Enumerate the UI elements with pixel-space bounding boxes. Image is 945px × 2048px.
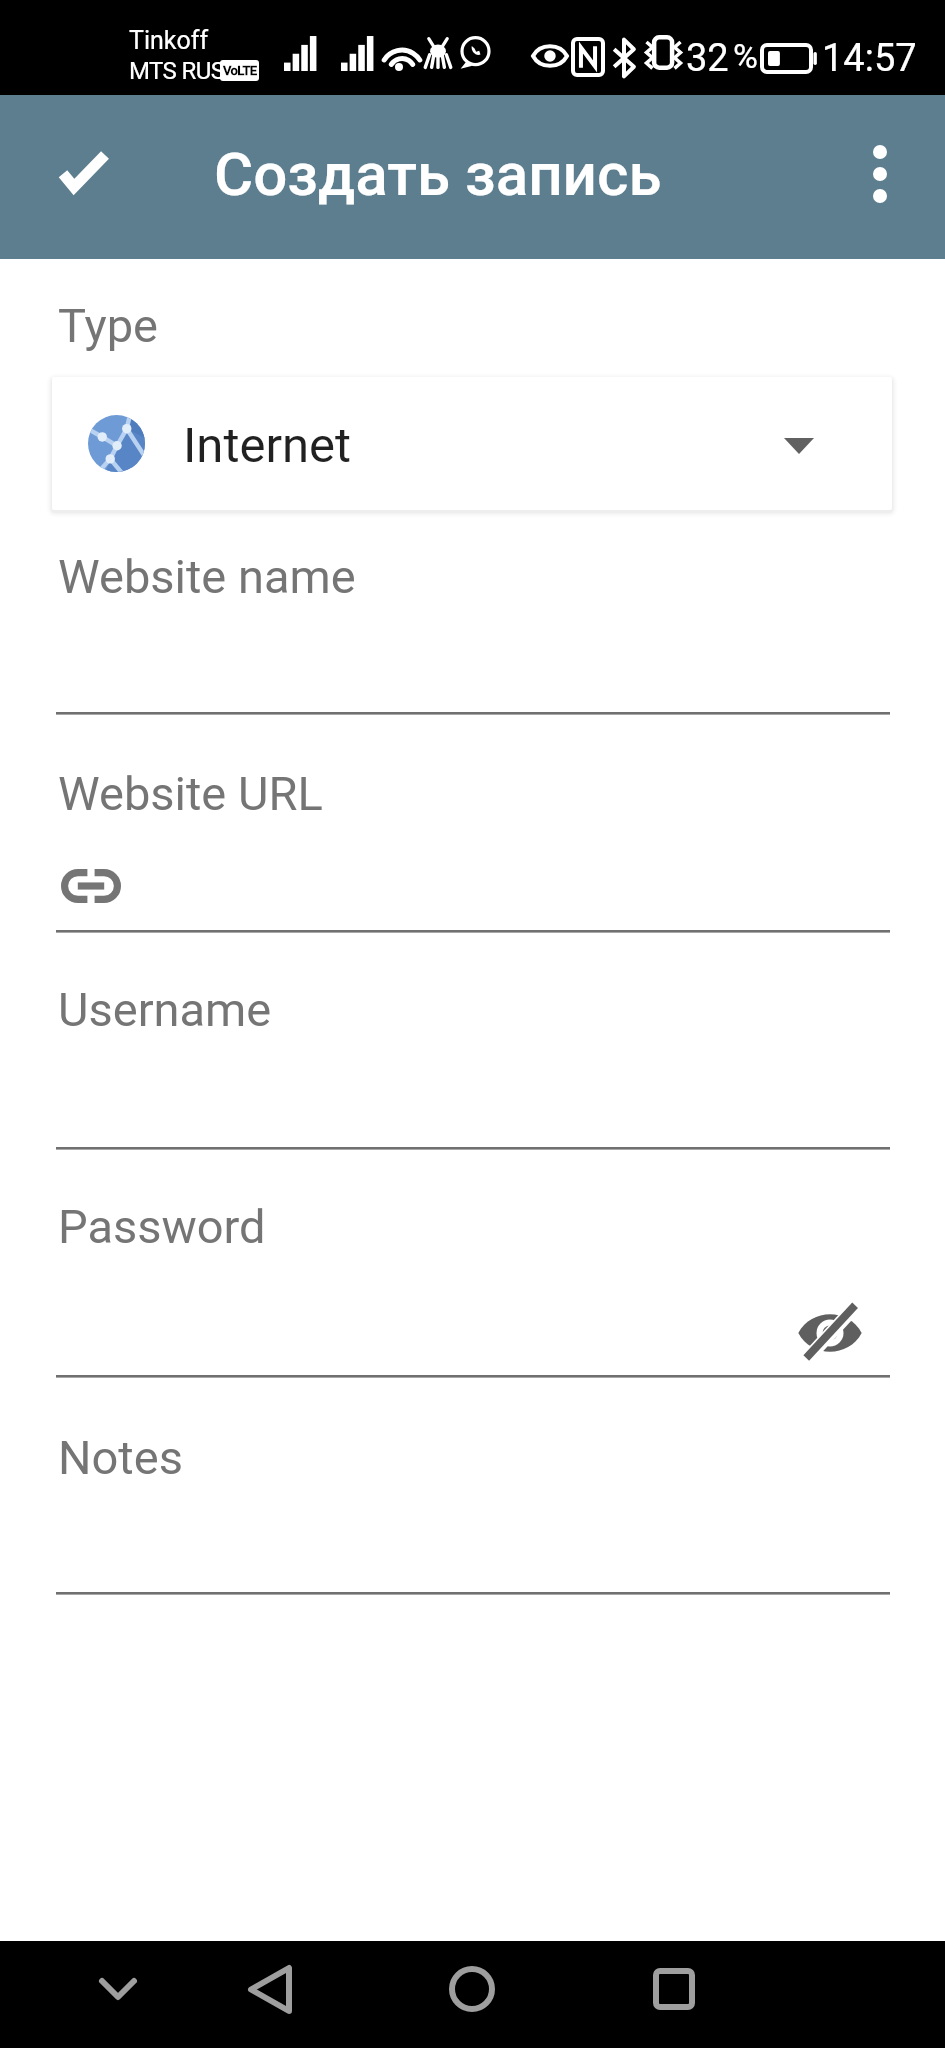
staticText: 14:57 (822, 36, 917, 81)
button[interactable]: Back (224, 1943, 316, 2035)
staticText: Tinkoff (129, 26, 209, 55)
button[interactable]: Save (28, 116, 138, 226)
staticText: Website name (58, 549, 356, 604)
button[interactable]: Show password (784, 1286, 876, 1378)
button[interactable]: Recents (628, 1943, 720, 2035)
staticText: VoLTE (223, 63, 257, 78)
staticText: Создать запись (214, 139, 662, 209)
staticText: % (733, 36, 758, 76)
staticText: Website URL (58, 766, 323, 821)
button[interactable]: Internet (52, 377, 892, 510)
button[interactable]: More options (828, 122, 932, 226)
staticText: Password (58, 1199, 266, 1254)
staticText: 32 (686, 36, 729, 81)
staticText: Internet (183, 417, 352, 474)
staticText: MTS RUS (129, 57, 225, 85)
button[interactable]: Home (426, 1943, 518, 2035)
staticText: Type (58, 298, 158, 353)
staticText: Notes (58, 1430, 183, 1485)
staticText: Username (58, 982, 272, 1037)
button[interactable]: Hide keyboard (72, 1943, 164, 2035)
